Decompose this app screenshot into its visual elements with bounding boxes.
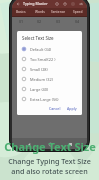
staticText: Typing Master: [23, 1, 48, 6]
button[interactable]: Back: [25, 140, 33, 148]
button[interactable]: 04: [68, 17, 87, 26]
staticText: Basics: [16, 10, 26, 14]
button[interactable]: 03: [49, 17, 68, 26]
button[interactable]: Speed: [68, 8, 87, 16]
staticText: Small (28): [30, 67, 48, 72]
staticText: Speed: [73, 10, 83, 14]
staticText: Change Text Size: [4, 139, 96, 154]
staticText: 04: [75, 19, 80, 24]
staticText: 01: [19, 19, 24, 24]
staticText: Too Small(22 ): [30, 57, 56, 62]
button[interactable]: Refresh: [54, 1, 60, 7]
button[interactable]: Large (40): [22, 84, 79, 94]
staticText: Default (34): [30, 47, 52, 52]
button[interactable]: Back: [15, 1, 21, 7]
staticText: Cancel: [49, 106, 61, 111]
staticText: Words: [35, 10, 45, 14]
button[interactable]: Too Small(22 ): [22, 54, 79, 64]
button[interactable]: Small (28): [22, 64, 79, 74]
button[interactable]: Home: [46, 140, 54, 148]
button[interactable]: Sentence: [49, 8, 68, 16]
staticText: Extra Large (56): [30, 97, 59, 102]
staticText: Select Text Size: [22, 35, 54, 41]
staticText: Change Typing Text Size: [8, 156, 91, 166]
button[interactable]: Fullscreen: [70, 1, 76, 7]
button[interactable]: 01: [12, 17, 30, 26]
staticText: 03: [56, 19, 61, 24]
button[interactable]: Timer: [62, 1, 68, 7]
button[interactable]: Extra Large (56): [22, 94, 79, 104]
button[interactable]: Basics: [12, 8, 30, 16]
staticText: Large (40): [30, 87, 49, 92]
staticText: Sentence: [51, 10, 66, 14]
button[interactable]: Text size: [78, 1, 84, 7]
button[interactable]: Recent apps: [66, 140, 74, 148]
button[interactable]: Words: [30, 8, 49, 16]
button[interactable]: 02: [30, 17, 49, 26]
staticText: and also rotate screen: [11, 166, 88, 176]
staticText: 02: [37, 19, 42, 24]
button[interactable]: Apply: [65, 105, 79, 112]
staticText: Medium (32): [30, 77, 53, 82]
staticText: Apply: [67, 106, 77, 111]
button[interactable]: Default (34): [22, 44, 79, 54]
button[interactable]: Cancel: [47, 105, 63, 112]
button[interactable]: Medium (32): [22, 74, 79, 84]
